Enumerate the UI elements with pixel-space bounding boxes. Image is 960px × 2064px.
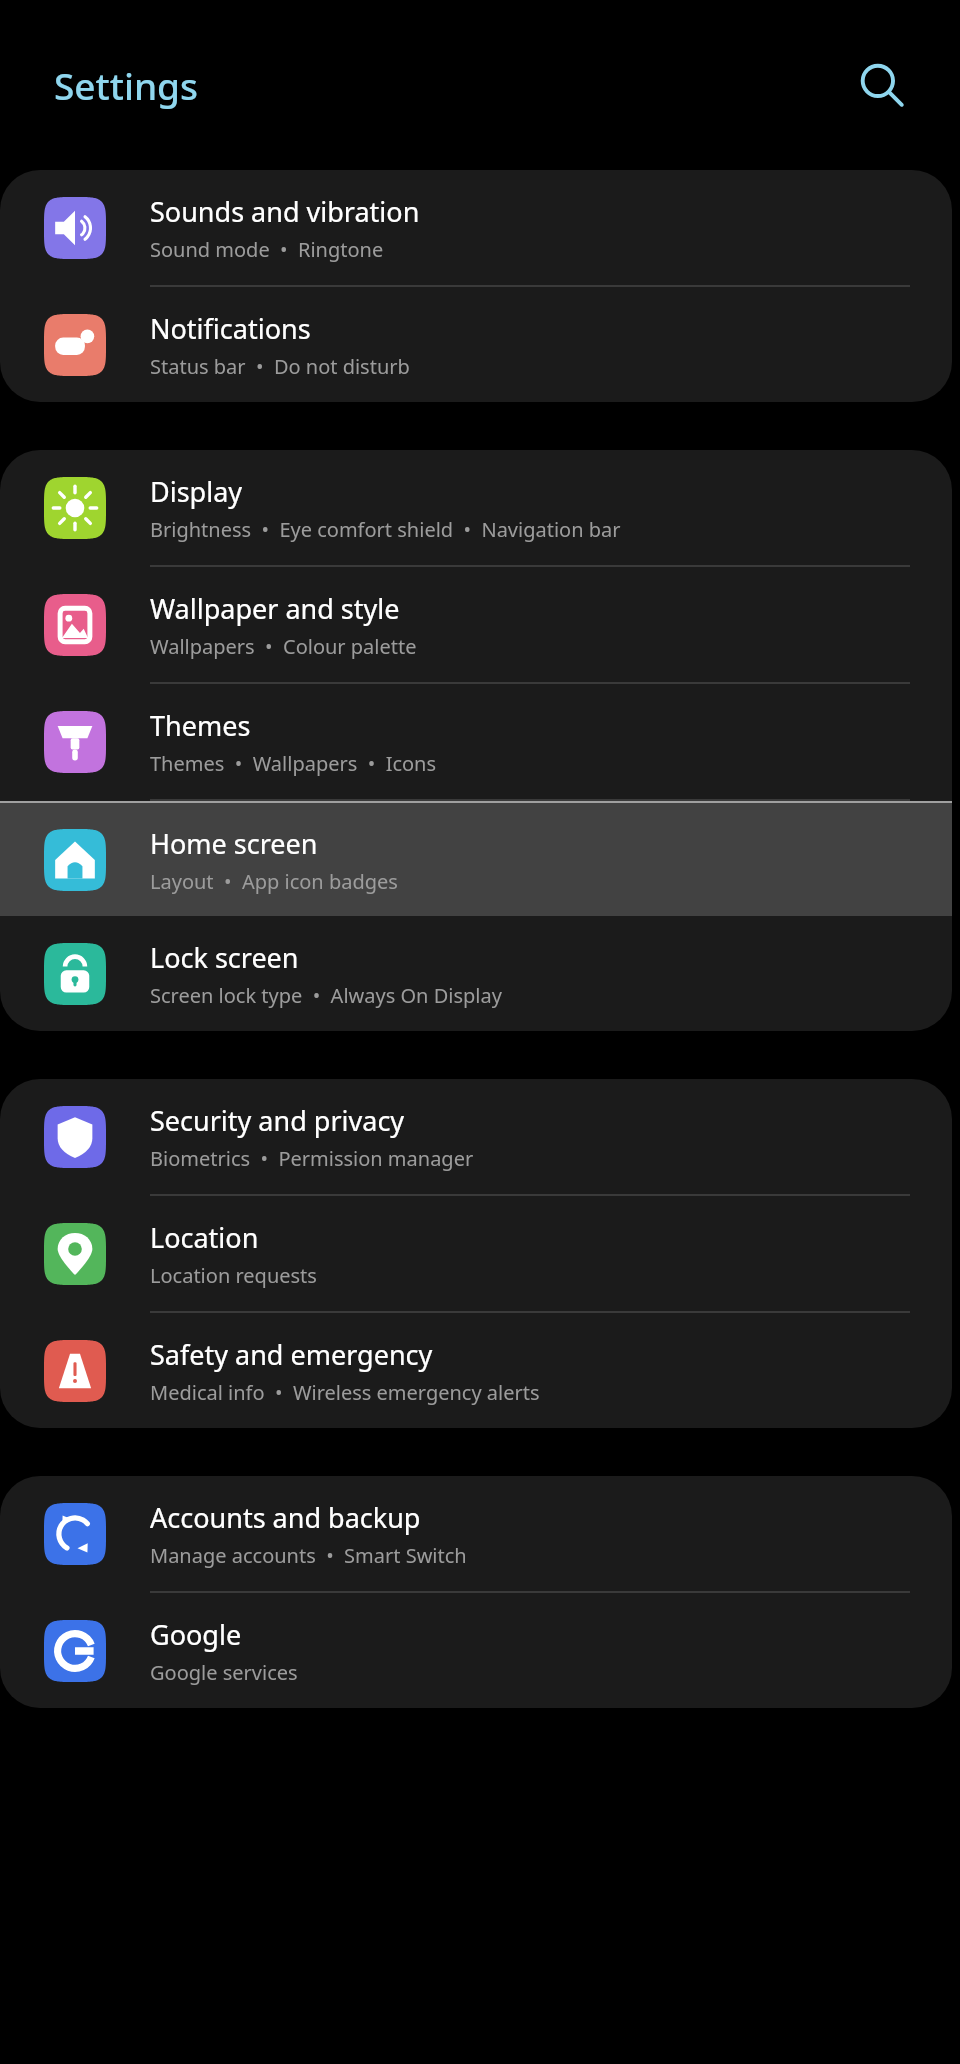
button[interactable]: Themes <box>0 684 952 801</box>
staticText: Settings <box>54 60 199 110</box>
button[interactable]: Security and privacy <box>0 1079 952 1196</box>
staticText: Manage accounts • Smart Switch <box>150 1542 467 1569</box>
staticText: Wallpaper and style <box>150 590 400 627</box>
button[interactable]: Location <box>0 1196 952 1313</box>
staticText: Home screen <box>150 825 318 862</box>
staticText: Brightness • Eye comfort shield • Naviga… <box>150 516 621 543</box>
staticText: Lock screen <box>150 939 299 976</box>
button[interactable]: Safety and emergency <box>0 1313 952 1428</box>
staticText: Biometrics • Permission manager <box>150 1145 474 1172</box>
button[interactable]: Search <box>844 47 920 123</box>
staticText: Safety and emergency <box>150 1336 433 1373</box>
staticText: Accounts and backup <box>150 1499 421 1536</box>
staticText: Screen lock type • Always On Display <box>150 982 502 1009</box>
button[interactable]: Accounts and backup <box>0 1476 952 1593</box>
staticText: Status bar • Do not disturb <box>150 353 410 380</box>
staticText: Wallpapers • Colour palette <box>150 633 417 660</box>
staticText: Display <box>150 473 243 510</box>
button[interactable]: Home screen <box>0 801 952 916</box>
staticText: Medical info • Wireless emergency alerts <box>150 1379 540 1406</box>
button[interactable]: Notifications <box>0 287 952 402</box>
button[interactable]: Sounds and vibration <box>0 170 952 287</box>
staticText: Google <box>150 1616 242 1653</box>
staticText: Sound mode • Ringtone <box>150 236 384 263</box>
staticText: Google services <box>150 1659 298 1686</box>
staticText: Layout • App icon badges <box>150 868 398 895</box>
staticText: Themes • Wallpapers • Icons <box>150 750 437 777</box>
staticText: Location <box>150 1219 259 1256</box>
staticText: Security and privacy <box>150 1102 405 1139</box>
button[interactable]: Lock screen <box>0 916 952 1031</box>
staticText: Themes <box>150 707 251 744</box>
staticText: Location requests <box>150 1262 317 1289</box>
button[interactable]: Google <box>0 1593 952 1708</box>
button[interactable]: Wallpaper and style <box>0 567 952 684</box>
staticText: Notifications <box>150 310 311 347</box>
staticText: Sounds and vibration <box>150 193 420 230</box>
button[interactable]: Display <box>0 450 952 567</box>
